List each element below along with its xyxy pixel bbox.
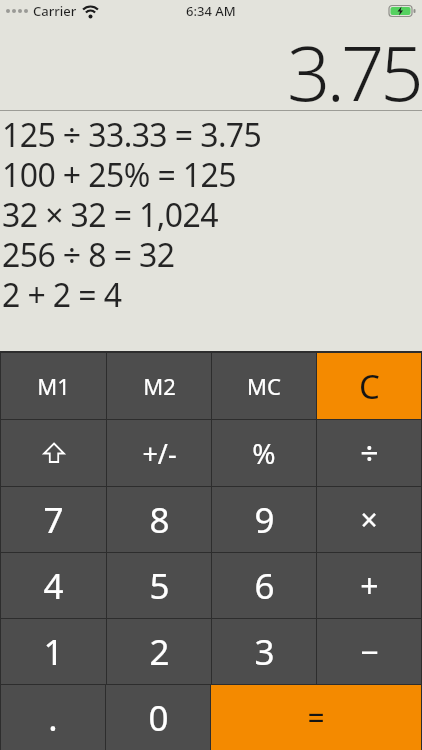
button[interactable]: % — [212, 420, 316, 486]
staticText: 8 — [149, 496, 170, 544]
staticText: 6 — [254, 562, 275, 610]
button[interactable] — [1, 420, 106, 486]
staticText: 2 + 2 = 4 — [2, 273, 122, 313]
button[interactable]: 5 — [107, 553, 211, 618]
staticText: C — [359, 364, 380, 409]
staticText: % — [252, 434, 276, 472]
button[interactable]: ÷ — [317, 420, 421, 486]
button[interactable]: . — [1, 685, 105, 750]
button[interactable]: 7 — [1, 487, 106, 552]
button[interactable]: 8 — [107, 487, 211, 552]
staticText: 6:34 AM — [186, 2, 236, 20]
staticText: 0 — [148, 694, 169, 742]
staticText: − — [360, 630, 379, 674]
button[interactable]: 2 — [107, 619, 211, 684]
staticText: × — [360, 499, 378, 540]
staticText: 3 — [254, 628, 275, 676]
button[interactable]: +/- — [107, 420, 211, 486]
staticText: ÷ — [360, 431, 379, 475]
staticText: 4 — [43, 562, 64, 610]
button[interactable]: 1 — [1, 619, 106, 684]
button[interactable]: 4 — [1, 553, 106, 618]
staticText: M2 — [143, 371, 176, 401]
staticText: 1 — [43, 628, 64, 676]
staticText: 100 + 25% = 125 — [2, 153, 236, 193]
staticText: MC — [247, 371, 281, 401]
button[interactable]: 9 — [212, 487, 316, 552]
button[interactable]: C — [317, 353, 421, 419]
button[interactable]: 3 — [212, 619, 316, 684]
staticText: 256 ÷ 8 = 32 — [2, 233, 175, 273]
staticText: + — [360, 564, 379, 608]
button[interactable]: = — [211, 685, 421, 750]
staticText: 2 — [149, 628, 170, 676]
staticText: 7 — [43, 496, 64, 544]
button[interactable]: M2 — [107, 353, 211, 419]
staticText: . — [48, 694, 58, 742]
staticText: 32 × 32 = 1,024 — [2, 193, 218, 233]
staticText: = — [307, 697, 325, 738]
staticText: Carrier — [33, 2, 77, 20]
staticText: 125 ÷ 33.33 = 3.75 — [2, 113, 262, 153]
staticText: 3.75 — [287, 20, 420, 108]
button[interactable]: × — [317, 487, 421, 552]
button[interactable]: M1 — [1, 353, 106, 419]
staticText: +/- — [142, 435, 177, 472]
staticText: 5 — [149, 562, 170, 610]
staticText: 9 — [254, 496, 275, 544]
button[interactable]: 0 — [106, 685, 210, 750]
button[interactable]: − — [317, 619, 421, 684]
staticText: M1 — [37, 371, 70, 401]
button[interactable]: + — [317, 553, 421, 618]
button[interactable]: 6 — [212, 553, 316, 618]
button[interactable]: MC — [212, 353, 316, 419]
